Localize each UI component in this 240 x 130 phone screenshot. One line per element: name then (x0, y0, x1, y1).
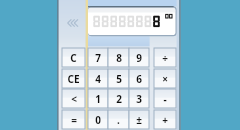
button[interactable]: - (154, 89, 176, 108)
button[interactable]: Collapse gadget (60, 13, 85, 33)
button[interactable]: 2 (108, 89, 129, 108)
staticText: 1 (95, 92, 101, 106)
button[interactable]: ÷ (154, 48, 176, 67)
staticText: - (163, 92, 167, 106)
staticText: ÷ (162, 51, 168, 65)
staticText: + (162, 113, 168, 127)
staticText: × (162, 72, 168, 86)
staticText: 5 (116, 72, 122, 86)
button[interactable]: 0 (88, 110, 108, 129)
staticText: 9 (136, 51, 142, 65)
button[interactable]: . (108, 110, 129, 129)
button[interactable]: 8 (108, 48, 129, 67)
button[interactable]: × (154, 69, 176, 88)
staticText: C (70, 51, 77, 65)
staticText: < (71, 92, 77, 106)
button[interactable]: 3 (129, 89, 149, 108)
button[interactable]: 4 (88, 69, 108, 88)
button[interactable]: 9 (129, 48, 149, 67)
button[interactable]: + (154, 110, 176, 129)
staticText: 8 (116, 51, 122, 65)
button[interactable]: = (62, 110, 85, 129)
staticText: 6 (136, 72, 142, 86)
button[interactable]: C (62, 48, 85, 67)
button[interactable]: < (62, 89, 85, 108)
staticText: 3 (136, 92, 142, 106)
button[interactable]: 1 (88, 89, 108, 108)
staticText: 7 (95, 51, 101, 65)
button[interactable]: 5 (108, 69, 129, 88)
staticText: 4 (95, 72, 101, 86)
staticText: = (71, 113, 77, 127)
button[interactable]: 7 (88, 48, 108, 67)
button[interactable]: 6 (129, 69, 149, 88)
staticText: CE (67, 72, 80, 86)
button[interactable]: ± (129, 110, 149, 129)
staticText: 0 (95, 113, 101, 127)
staticText: 2 (116, 92, 122, 106)
staticText: . (117, 113, 120, 127)
button[interactable]: CE (62, 69, 85, 88)
staticText: ± (136, 113, 142, 127)
